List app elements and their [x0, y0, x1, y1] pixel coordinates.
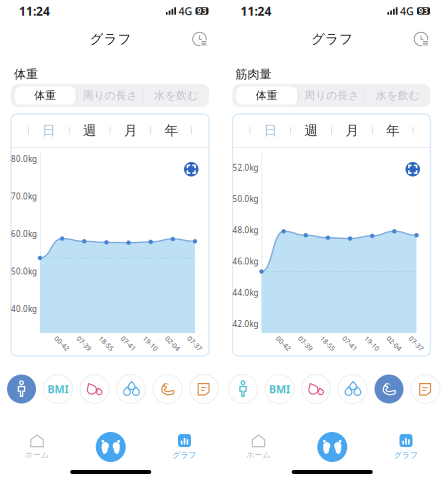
staticText: 02-04 — [164, 339, 182, 348]
staticText: 00-42 — [274, 339, 292, 348]
staticText: 50.0kg — [11, 266, 37, 277]
staticText: 週 — [83, 122, 96, 139]
staticText: ホーム — [246, 450, 270, 460]
staticText: 11:24 — [240, 3, 271, 19]
staticText: 00-42 — [53, 339, 71, 348]
button[interactable]: Notes — [409, 372, 442, 405]
staticText: 18-55 — [319, 339, 337, 348]
button[interactable]: 月 — [110, 114, 150, 147]
staticText: グラフ — [172, 450, 196, 460]
button[interactable]: ホーム — [223, 430, 293, 464]
staticText: 体重 — [34, 89, 56, 102]
staticText: 月 — [345, 122, 358, 139]
button[interactable]: Measure — [91, 430, 131, 464]
button[interactable]: 周りの長さ — [76, 84, 145, 107]
button[interactable]: 日 — [29, 114, 69, 147]
staticText: 93 — [197, 6, 207, 16]
button[interactable]: 体重 — [12, 84, 76, 107]
button[interactable]: 週 — [70, 114, 110, 147]
staticText: 18-55 — [97, 339, 115, 348]
staticText: 年 — [386, 122, 399, 139]
staticText: 07-37 — [186, 339, 204, 348]
button[interactable]: ホーム — [2, 430, 72, 464]
staticText: ホーム — [25, 450, 49, 460]
staticText: 月 — [124, 122, 137, 139]
button[interactable]: 水を飲む — [145, 84, 208, 107]
staticText: 日 — [42, 122, 55, 139]
button[interactable]: History — [187, 27, 211, 51]
button[interactable]: 週 — [291, 114, 331, 147]
staticText: 水を飲む — [154, 89, 198, 102]
button[interactable]: 年 — [373, 114, 413, 147]
button[interactable]: BMI — [263, 372, 296, 405]
button[interactable]: History — [409, 27, 433, 51]
staticText: 40.0kg — [11, 304, 37, 314]
staticText: グラフ — [311, 31, 353, 47]
staticText: 4G — [178, 4, 192, 18]
staticText: 46.0kg — [232, 256, 258, 267]
staticText: 07-39 — [297, 339, 315, 348]
button[interactable]: 月 — [332, 114, 372, 147]
staticText: 年 — [165, 122, 178, 139]
staticText: 19-10 — [363, 339, 381, 348]
button[interactable]: Muscle mass — [151, 372, 184, 405]
button[interactable]: 水を飲む — [366, 84, 429, 107]
button[interactable]: BMI — [41, 372, 74, 405]
button[interactable]: Body water — [114, 372, 147, 405]
staticText: 周りの長さ — [304, 89, 359, 102]
staticText: グラフ — [90, 31, 132, 47]
staticText: 07-41 — [119, 339, 137, 348]
staticText: 60.0kg — [11, 229, 37, 239]
staticText: 07-37 — [407, 339, 425, 348]
staticText: 日 — [264, 122, 277, 139]
staticText: 体重 — [14, 67, 38, 82]
button[interactable]: 体重 — [234, 84, 297, 107]
staticText: 48.0kg — [232, 225, 258, 235]
staticText: 体重 — [256, 89, 278, 102]
staticText: 93 — [418, 6, 428, 16]
button[interactable]: 日 — [250, 114, 290, 147]
button[interactable]: グラフ — [149, 430, 219, 464]
staticText: 42.0kg — [232, 319, 258, 329]
button[interactable]: Body fat — [299, 372, 332, 405]
staticText: 水を飲む — [376, 89, 420, 102]
staticText: 19-10 — [142, 339, 160, 348]
button[interactable]: Muscle mass — [372, 372, 405, 405]
staticText: 50.0kg — [232, 194, 258, 204]
staticText: BMI — [269, 382, 290, 396]
button[interactable]: Body fat — [78, 372, 111, 405]
staticText: 52.0kg — [232, 162, 258, 173]
staticText: BMI — [47, 382, 68, 396]
staticText: 4G — [400, 4, 414, 18]
staticText: 周りの長さ — [83, 89, 138, 102]
button[interactable]: Expand chart — [405, 162, 420, 176]
staticText: 07-39 — [75, 339, 93, 348]
staticText: 80.0kg — [11, 154, 37, 164]
staticText: 筋肉量 — [235, 67, 271, 82]
button[interactable]: Weight — [5, 372, 38, 405]
button[interactable]: Weight — [226, 372, 259, 405]
staticText: 44.0kg — [232, 287, 258, 298]
button[interactable]: 周りの長さ — [297, 84, 366, 107]
button[interactable]: Measure — [312, 430, 352, 464]
staticText: 70.0kg — [11, 191, 37, 202]
button[interactable]: Body water — [336, 372, 369, 405]
staticText: 02-04 — [385, 339, 403, 348]
button[interactable]: 年 — [151, 114, 191, 147]
staticText: グラフ — [394, 450, 418, 460]
staticText: 11:24 — [19, 3, 50, 19]
button[interactable]: Notes — [187, 372, 220, 405]
staticText: 週 — [305, 122, 318, 139]
button[interactable]: グラフ — [371, 430, 441, 464]
button[interactable]: Expand chart — [184, 162, 198, 176]
staticText: 07-41 — [341, 339, 359, 348]
